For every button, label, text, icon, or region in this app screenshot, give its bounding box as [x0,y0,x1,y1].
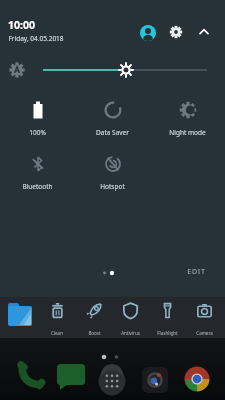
button[interactable] [56,362,86,392]
button[interactable] [15,362,45,392]
staticText: Boost [88,330,101,336]
staticText: Hotspot [100,182,125,191]
button[interactable]: Night mode [157,96,218,140]
button[interactable]: Bluetooth [7,150,68,194]
button[interactable]: 100% [7,96,68,140]
staticText: 100% [29,128,46,137]
staticText: Camera [196,330,213,336]
button[interactable] [121,301,140,320]
staticText: Antivirus [121,330,140,336]
staticText: Flashlight [157,330,178,336]
staticText: EDIT [187,267,206,277]
button[interactable] [48,301,67,320]
staticText: Clean [51,330,63,336]
button[interactable] [158,301,177,320]
button[interactable] [168,24,184,40]
button[interactable] [97,366,127,396]
button[interactable] [140,25,156,41]
button[interactable] [182,364,212,394]
staticText: Data Saver [96,128,129,137]
button[interactable]: Data Saver [82,96,143,140]
button[interactable] [140,366,170,396]
staticText: Friday, 04.05.2018 [8,34,64,43]
button[interactable] [195,301,214,320]
staticText: Night mode [169,128,206,137]
staticText: Bluetooth [22,182,53,191]
button[interactable]: Hotspot [82,150,143,194]
button[interactable]: EDIT [180,264,212,280]
button[interactable] [196,24,212,40]
staticText: 10:00 [8,18,35,32]
button[interactable] [85,301,104,320]
